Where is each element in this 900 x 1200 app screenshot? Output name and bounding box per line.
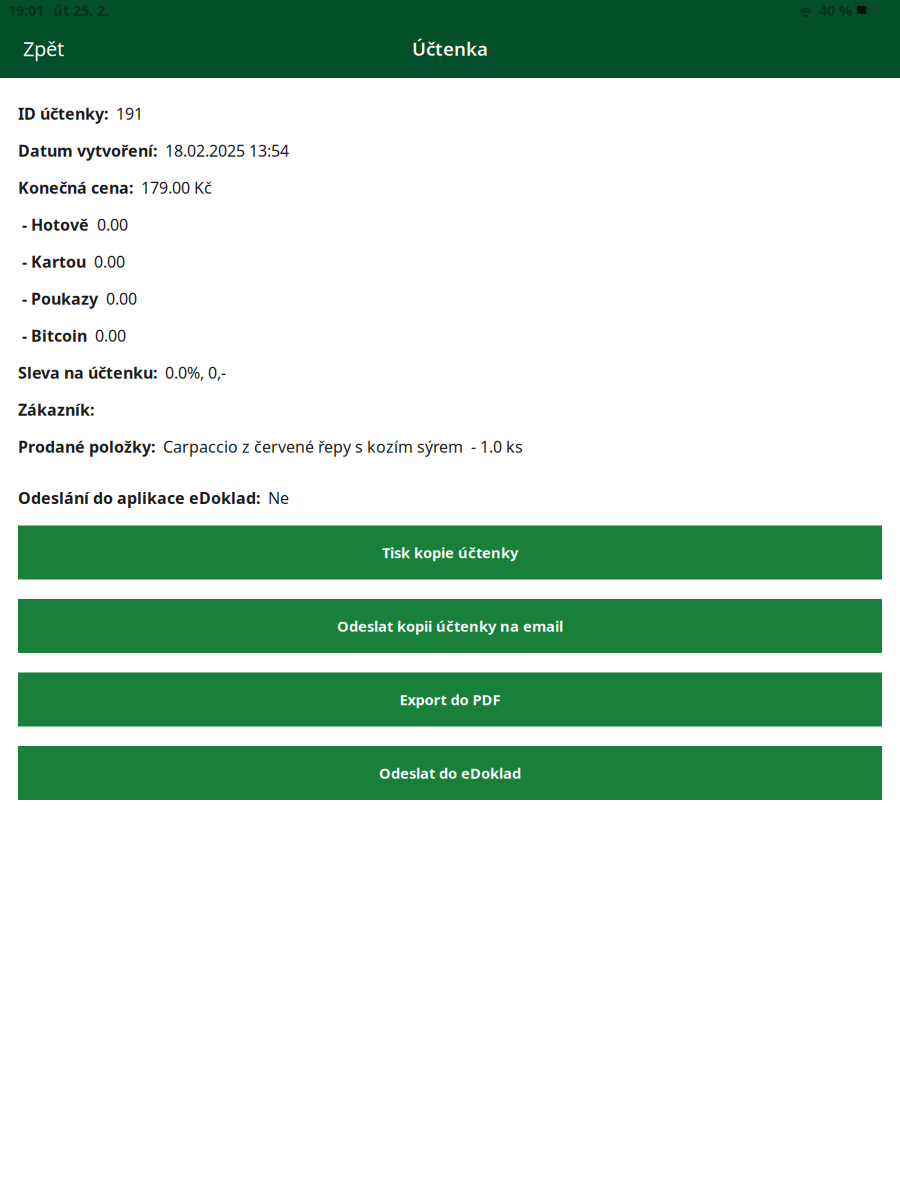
staticText: Odeslání do aplikace eDoklad:: [18, 487, 260, 508]
staticText: 0.00: [95, 325, 126, 346]
staticText: - Poukazy: [18, 288, 98, 309]
button[interactable]: Export do PDF: [18, 672, 882, 726]
staticText: 19:01: [8, 0, 44, 20]
staticText: Export do PDF: [399, 690, 500, 709]
staticText: 0.00: [97, 214, 128, 235]
staticText: - Kartou: [18, 251, 86, 272]
staticText: - Hotově: [18, 214, 89, 235]
staticText: 0.00: [106, 288, 137, 309]
button[interactable]: Odeslat do eDoklad: [18, 746, 882, 800]
button[interactable]: Odeslat kopii účtenky na email: [18, 599, 882, 653]
staticText: Ne: [268, 487, 289, 508]
button[interactable]: Zpět: [17, 25, 70, 72]
staticText: Zpět: [23, 35, 64, 62]
staticText: 18.02.2025 13:54: [165, 140, 289, 161]
staticText: Konečná cena:: [18, 177, 133, 198]
staticText: 0.0%, 0,-: [165, 362, 226, 383]
staticText: 40 %: [819, 0, 852, 20]
staticText: Carpaccio z červené řepy s kozím sýrem -…: [163, 436, 523, 457]
staticText: út 25. 2.: [53, 0, 109, 20]
staticText: Odeslat kopii účtenky na email: [337, 616, 563, 636]
staticText: Zákazník:: [18, 399, 94, 420]
staticText: Tisk kopie účtenky: [382, 543, 518, 562]
staticText: Odeslat do eDoklad: [379, 763, 521, 783]
staticText: 191: [116, 103, 143, 124]
staticText: Prodané položky:: [18, 436, 155, 457]
staticText: 0.00: [94, 251, 125, 272]
staticText: - Bitcoin: [18, 325, 87, 346]
button[interactable]: Tisk kopie účtenky: [18, 525, 882, 579]
staticText: ID účtenky:: [18, 103, 108, 124]
staticText: Sleva na účtenku:: [18, 362, 157, 383]
staticText: Účtenka: [412, 36, 488, 61]
staticText: 179.00 Kč: [141, 177, 212, 198]
staticText: Datum vytvoření:: [18, 140, 157, 161]
